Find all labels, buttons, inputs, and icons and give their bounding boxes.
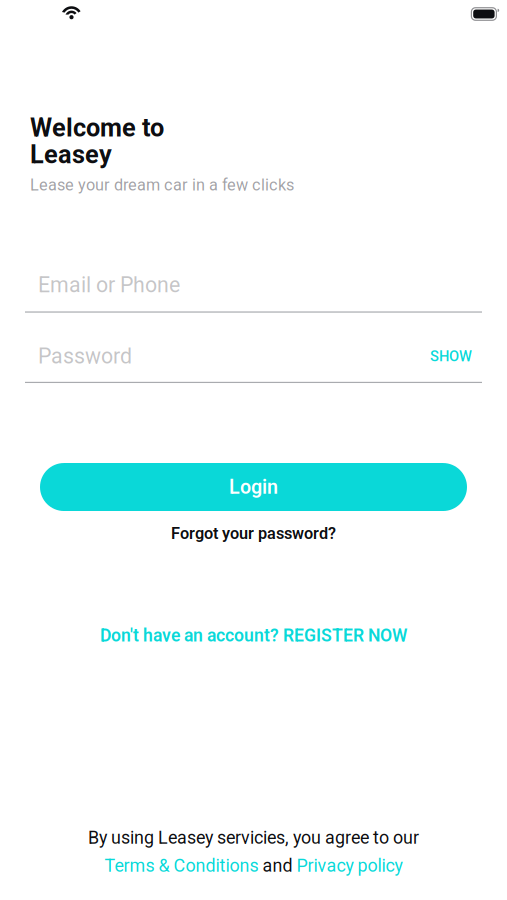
staticText: Email or Phone bbox=[38, 272, 180, 297]
staticText: Privacy policy bbox=[296, 855, 402, 876]
staticText: Terms & Conditions bbox=[104, 855, 258, 876]
button[interactable]: Terms & Conditions bbox=[104, 855, 258, 876]
staticText: Don't have an account? REGISTER NOW bbox=[100, 625, 407, 646]
button[interactable]: Don't have an account? REGISTER NOW bbox=[0, 621, 507, 650]
staticText: By using Leasey servicies, you agree to … bbox=[88, 827, 419, 848]
staticText: Welcome to bbox=[30, 113, 164, 143]
staticText: Leasey bbox=[30, 140, 112, 169]
staticText: Login bbox=[229, 475, 278, 499]
staticText: Password bbox=[38, 344, 132, 369]
button[interactable]: Privacy policy bbox=[296, 855, 402, 876]
staticText: and bbox=[258, 855, 296, 876]
staticText: Forgot your password? bbox=[171, 524, 336, 543]
staticText: Lease your dream car in a few clicks bbox=[30, 175, 294, 194]
button[interactable]: Forgot your password? bbox=[0, 521, 507, 546]
staticText: SHOW bbox=[430, 348, 472, 365]
button[interactable]: Login bbox=[40, 463, 467, 511]
button[interactable]: SHOW bbox=[424, 344, 482, 369]
